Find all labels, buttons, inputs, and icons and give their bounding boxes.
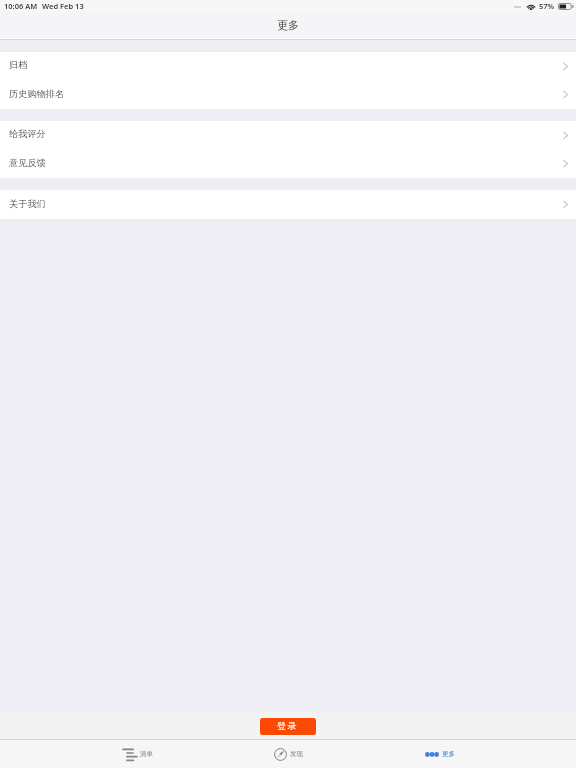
staticText: 归档 [9,59,28,71]
button[interactable]: 发现 [213,740,364,768]
staticText: 意见反馈 [9,157,46,169]
staticText: 10:06 AM [4,1,38,11]
staticText: 清单 [140,750,153,758]
button[interactable]: 历史购物排名 [0,80,576,109]
button[interactable]: 归档 [0,52,576,80]
staticText: 更多 [442,750,455,758]
button[interactable]: 清单 [62,740,213,768]
button[interactable]: 更多 [364,740,515,768]
button[interactable]: 给我评分 [0,121,576,149]
staticText: 发现 [290,750,303,758]
staticText: 登录 [277,720,299,731]
button[interactable]: 登录 [260,718,316,735]
button[interactable]: 意见反馈 [0,149,576,178]
staticText: 关于我们 [9,198,46,210]
staticText: 更多 [277,18,299,32]
staticText: 历史购物排名 [9,88,65,100]
staticText: Wed Feb 13 [42,1,84,11]
staticText: 57% [539,1,555,11]
button[interactable]: 关于我们 [0,190,576,219]
staticText: 给我评分 [9,128,46,140]
